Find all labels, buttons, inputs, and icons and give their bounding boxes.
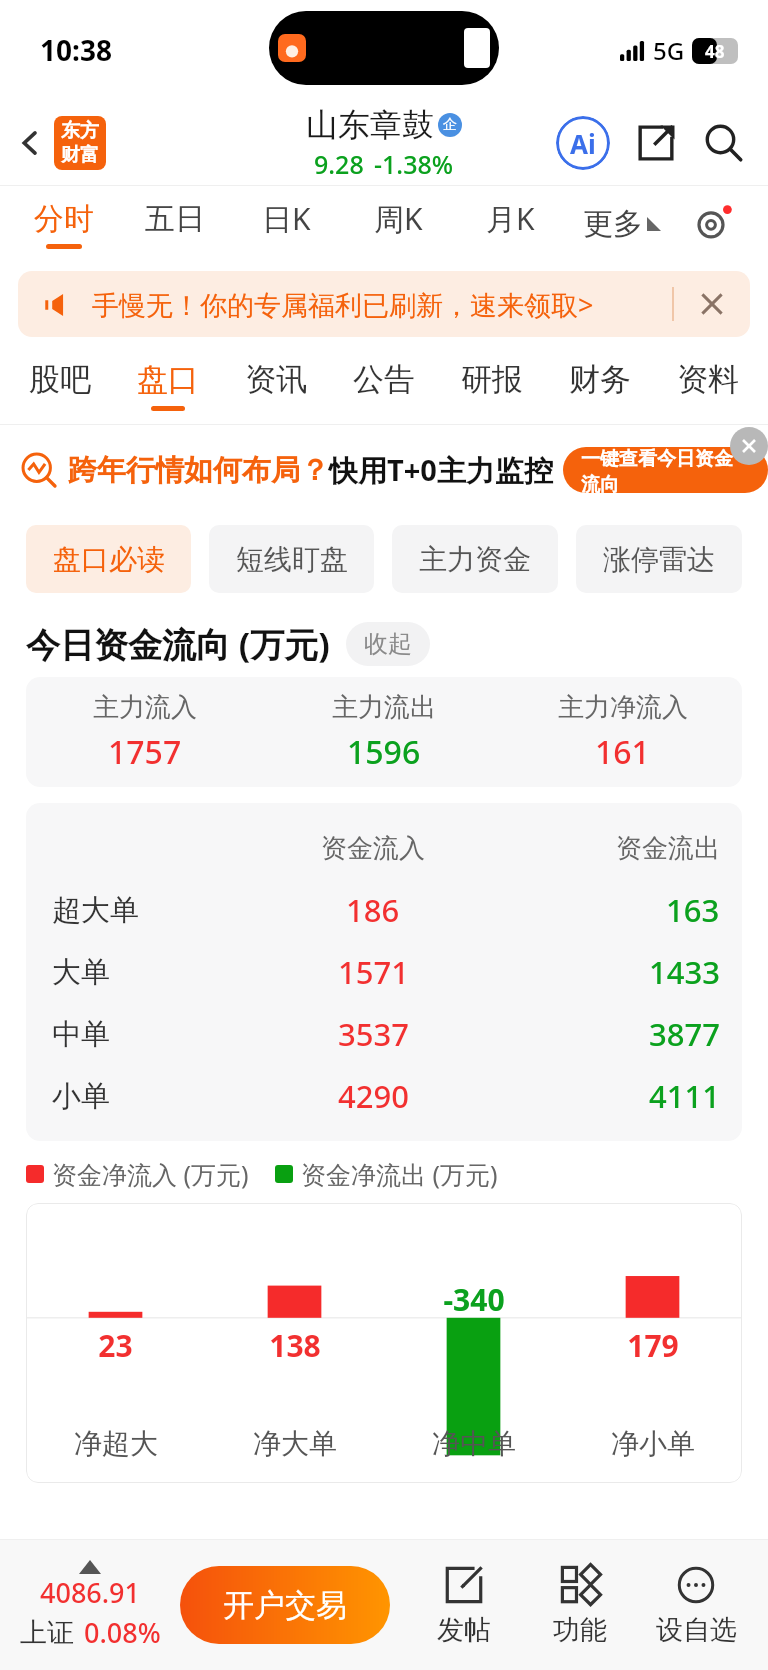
button[interactable]: 发帖 [406, 1563, 522, 1647]
staticText: -1.38% [374, 147, 454, 181]
staticText: 48 [705, 40, 725, 63]
button[interactable]: 涨停雷达 [576, 525, 742, 593]
staticText: 日K [262, 198, 311, 239]
button[interactable]: 设自选 [638, 1563, 754, 1647]
staticText: 盘口 [137, 360, 199, 399]
button[interactable]: AI assistant [556, 116, 610, 170]
button[interactable]: Settings [678, 185, 748, 263]
staticText: 今日资金流向 (万元) [26, 621, 330, 667]
staticText: 主力净流入 [558, 691, 688, 724]
button[interactable]: 资料 [654, 345, 762, 425]
button[interactable]: 研报 [438, 345, 546, 425]
staticText: 五日 [145, 200, 205, 238]
staticText: 超大单 [52, 892, 139, 929]
staticText: 快用T+0主力监控 [329, 450, 553, 490]
staticText: 主力资金 [419, 542, 531, 577]
staticText: 主力流入 [93, 691, 197, 724]
button[interactable]: 短线盯盘 [209, 525, 374, 593]
button[interactable]: Close ad [730, 427, 768, 465]
staticText: 净小单 [611, 1426, 695, 1461]
button[interactable]: Search [702, 121, 746, 165]
button[interactable]: 资讯 [222, 345, 330, 425]
staticText: 资金流入 [321, 832, 425, 865]
staticText: 财务 [569, 360, 631, 399]
staticText: 涨停雷达 [603, 542, 715, 577]
staticText: 3877 [649, 1013, 720, 1055]
staticText: 企 [443, 116, 457, 134]
staticText: 财富 [61, 143, 99, 167]
staticText: 10:38 [40, 31, 112, 69]
staticText: 163 [666, 889, 720, 931]
staticText: 4111 [649, 1075, 720, 1117]
button[interactable]: 主力资金 [392, 525, 558, 593]
staticText: 周K [374, 198, 423, 239]
button[interactable]: 周K [342, 185, 454, 263]
staticText: 9.28 [314, 147, 364, 181]
button[interactable]: 股吧 [6, 345, 114, 425]
staticText: 净中单 [432, 1426, 516, 1461]
staticText: 资金净流出 (万元) [301, 1157, 498, 1191]
button[interactable]: 五日 [119, 185, 230, 263]
button[interactable]: Close banner [696, 288, 728, 320]
staticText: 资料 [677, 360, 739, 399]
button[interactable]: 开户交易 [180, 1566, 390, 1644]
staticText: 跨年行情如何布局？ [68, 452, 329, 489]
staticText: 138 [269, 1325, 321, 1366]
staticText: 上证 [20, 1616, 74, 1650]
other: Back [12, 125, 48, 161]
button[interactable]: Back [12, 116, 106, 170]
staticText: 0.08% [84, 1614, 161, 1651]
staticText: 1571 [338, 951, 409, 993]
staticText: 4290 [338, 1075, 409, 1117]
staticText: 资讯 [245, 360, 307, 399]
button[interactable]: 一键查看今日资金流向 [563, 447, 768, 493]
button[interactable]: 分时 [8, 185, 119, 263]
staticText: 资金净流入 (万元) [52, 1157, 249, 1191]
staticText: 1757 [108, 730, 182, 774]
button[interactable]: 盘口必读 [26, 525, 191, 593]
staticText: -340 [443, 1279, 505, 1320]
staticText: 179 [627, 1325, 679, 1366]
staticText: 设自选 [656, 1613, 737, 1647]
staticText: Ai [570, 126, 596, 161]
staticText: 161 [595, 730, 650, 774]
staticText: 1433 [649, 951, 720, 993]
staticText: 净超大 [74, 1426, 158, 1461]
staticText: 一键查看今日资金流向 [581, 447, 750, 493]
button[interactable]: 盘口 [114, 345, 222, 425]
staticText: 更多 [583, 205, 643, 243]
staticText: 资金流出 [616, 832, 720, 865]
staticText: 股吧 [29, 360, 91, 399]
button[interactable]: 收起 [346, 622, 430, 666]
staticText: 东方 [61, 119, 99, 143]
staticText: 开户交易 [223, 1586, 347, 1625]
button[interactable]: 4086.91 [0, 1560, 180, 1651]
staticText: 盘口必读 [53, 542, 165, 577]
staticText: 分时 [34, 200, 94, 238]
staticText: 月K [486, 198, 535, 239]
staticText: 公告 [353, 360, 415, 399]
staticText: 功能 [553, 1613, 607, 1647]
button[interactable]: 财务 [546, 345, 654, 425]
staticText: 研报 [461, 360, 523, 399]
button[interactable]: 手慢无！你的专属福利已刷新，速来领取> [18, 271, 750, 337]
button[interactable]: 更多 [566, 185, 678, 263]
staticText: 主力流出 [332, 691, 436, 724]
staticText: 净大单 [253, 1426, 337, 1461]
button[interactable]: 月K [454, 185, 566, 263]
staticText: 大单 [52, 954, 110, 991]
staticText: 小单 [52, 1078, 110, 1115]
staticText: 5G [653, 34, 685, 67]
button[interactable]: 公告 [330, 345, 438, 425]
staticText: 中单 [52, 1016, 110, 1053]
button[interactable]: Share [634, 121, 678, 165]
staticText: 23 [98, 1325, 133, 1366]
staticText: 收起 [364, 629, 412, 659]
staticText: 山东章鼓 [306, 105, 434, 145]
staticText: 发帖 [437, 1613, 491, 1647]
button[interactable]: 功能 [522, 1563, 638, 1647]
staticText: 186 [346, 889, 400, 931]
staticText: 手慢无！你的专属福利已刷新，速来领取> [92, 286, 594, 323]
staticText: 3537 [338, 1013, 409, 1055]
button[interactable]: 日K [230, 185, 342, 263]
